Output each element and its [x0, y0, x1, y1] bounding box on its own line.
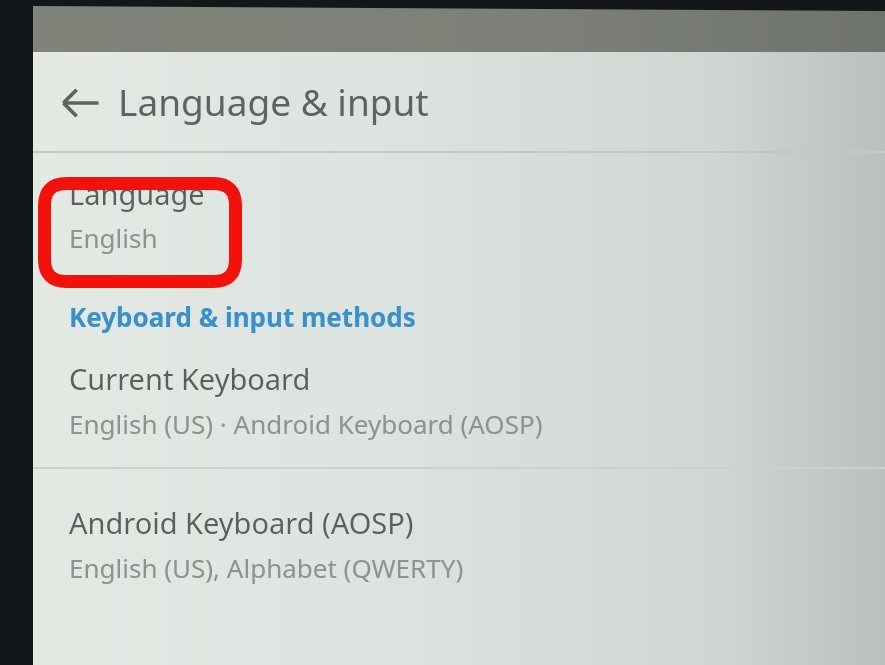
button[interactable]: Current Keyboard — [33, 345, 885, 469]
staticText: Language & input — [118, 76, 429, 126]
staticText: Keyboard & input methods — [69, 299, 416, 334]
staticText: English — [69, 220, 158, 255]
staticText: English (US), Alphabet (QWERTY) — [69, 550, 464, 585]
staticText: Android Keyboard (AOSP) — [69, 503, 414, 542]
button[interactable]: Android Keyboard (AOSP) — [33, 469, 885, 609]
staticText: Current Keyboard — [69, 359, 311, 398]
button[interactable]: Language — [33, 153, 885, 287]
button[interactable]: Back — [53, 75, 109, 131]
staticText: English (US) · Android Keyboard (AOSP) — [69, 406, 543, 441]
staticText: Language — [69, 174, 205, 213]
